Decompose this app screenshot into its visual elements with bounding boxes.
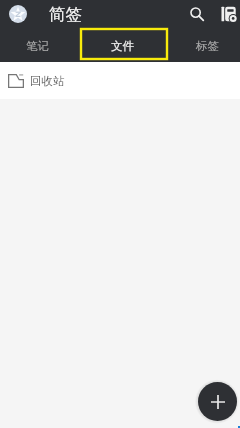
button[interactable]: Add note: [198, 382, 237, 421]
button[interactable]: 文件: [80, 28, 165, 62]
button[interactable]: Search: [184, 0, 210, 28]
staticText: 简签: [49, 4, 82, 25]
staticText: 文件: [111, 39, 134, 53]
staticText: 标签: [196, 39, 219, 53]
staticText: 回收站: [30, 74, 65, 88]
button[interactable]: 笔记: [0, 28, 80, 62]
staticText: 笔记: [26, 39, 49, 53]
button[interactable]: 标签: [165, 28, 240, 62]
button[interactable]: Notebooks: [218, 0, 240, 28]
button[interactable]: 回收站: [0, 62, 240, 99]
